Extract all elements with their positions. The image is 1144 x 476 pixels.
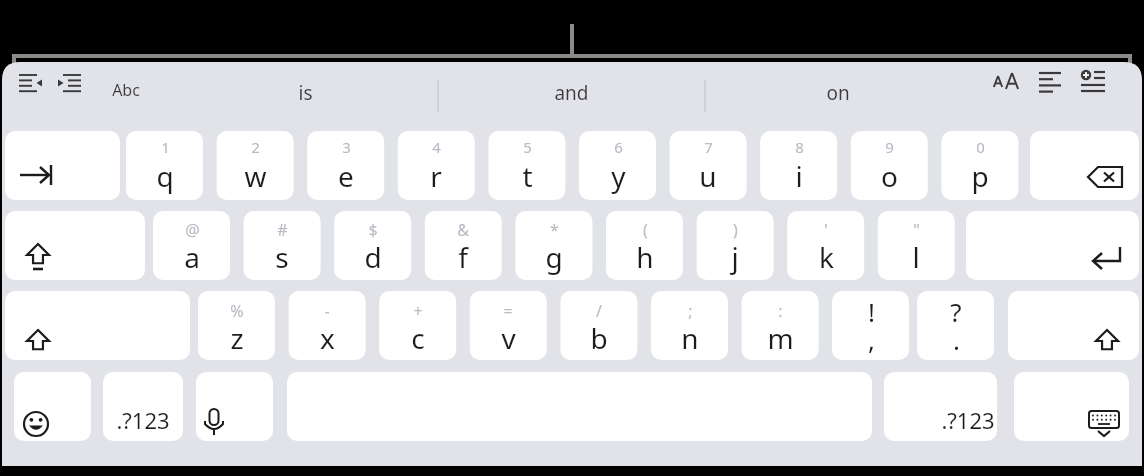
- button[interactable]: [697, 211, 774, 280]
- staticText: f: [458, 238, 468, 276]
- button[interactable]: [438, 70, 705, 114]
- staticText: on: [826, 80, 850, 106]
- button[interactable]: Shift: [1008, 291, 1139, 360]
- button[interactable]: [198, 291, 275, 360]
- staticText: k: [819, 238, 834, 276]
- button[interactable]: [289, 291, 366, 360]
- staticText: #: [277, 219, 288, 241]
- staticText: &: [457, 219, 469, 241]
- staticText: z: [230, 319, 244, 357]
- button[interactable]: [307, 131, 384, 200]
- staticText: e: [338, 157, 354, 195]
- button[interactable]: Dictation: [196, 372, 273, 441]
- button[interactable]: [103, 372, 183, 441]
- staticText: =: [503, 300, 513, 322]
- button[interactable]: Insert: [1082, 70, 1128, 112]
- staticText: d: [364, 238, 382, 276]
- button[interactable]: Shift: [5, 291, 190, 360]
- staticText: x: [320, 319, 335, 357]
- button[interactable]: [606, 211, 683, 280]
- staticText: b: [590, 319, 608, 357]
- button[interactable]: [560, 291, 637, 360]
- staticText: ': [824, 219, 828, 241]
- button[interactable]: [705, 70, 973, 114]
- staticText: %: [230, 300, 244, 322]
- button[interactable]: Backspace: [1030, 131, 1139, 200]
- button[interactable]: [334, 211, 411, 280]
- button[interactable]: Hide keyboard: [1014, 372, 1129, 441]
- staticText: r: [430, 157, 442, 195]
- staticText: ,: [868, 322, 875, 357]
- staticText: n: [681, 319, 699, 357]
- button[interactable]: [884, 372, 997, 441]
- button[interactable]: [651, 291, 728, 360]
- staticText: -: [324, 300, 330, 322]
- staticText: c: [411, 319, 425, 357]
- staticText: .?123: [941, 405, 995, 435]
- staticText: u: [699, 157, 717, 195]
- staticText: :: [778, 300, 783, 322]
- staticText: q: [156, 157, 174, 195]
- button[interactable]: [425, 211, 502, 280]
- staticText: .?123: [116, 405, 170, 435]
- staticText: 0: [976, 137, 985, 157]
- staticText: y: [611, 157, 626, 195]
- staticText: .: [953, 322, 960, 357]
- button[interactable]: [742, 291, 819, 360]
- staticText: w: [244, 157, 267, 195]
- button[interactable]: Alignment: [1038, 70, 1082, 112]
- staticText: h: [636, 238, 654, 276]
- button[interactable]: Emoji: [14, 372, 91, 441]
- staticText: is: [298, 80, 313, 106]
- button[interactable]: [217, 131, 294, 200]
- staticText: $: [368, 219, 378, 241]
- staticText: ": [913, 219, 920, 241]
- staticText: ?: [950, 294, 962, 329]
- staticText: @: [185, 219, 200, 241]
- button[interactable]: [670, 131, 747, 200]
- staticText: j: [731, 238, 739, 276]
- staticText: /: [596, 300, 602, 322]
- button[interactable]: [787, 211, 864, 280]
- button[interactable]: Tab: [5, 131, 120, 200]
- button[interactable]: Text mode Abc: [106, 72, 150, 110]
- button[interactable]: Text size: [994, 70, 1038, 112]
- button[interactable]: [941, 131, 1018, 200]
- button[interactable]: [170, 70, 438, 114]
- staticText: 6: [614, 137, 623, 157]
- staticText: 2: [251, 137, 260, 157]
- button[interactable]: [126, 131, 203, 200]
- button[interactable]: Caps lock: [5, 211, 145, 280]
- button[interactable]: [244, 211, 321, 280]
- staticText: l: [912, 238, 920, 276]
- button[interactable]: [379, 291, 456, 360]
- button[interactable]: [579, 131, 656, 200]
- button[interactable]: [878, 211, 955, 280]
- button[interactable]: [760, 131, 837, 200]
- button[interactable]: [851, 131, 928, 200]
- staticText: m: [767, 319, 794, 357]
- staticText: 5: [523, 137, 532, 157]
- staticText: *: [550, 219, 559, 241]
- staticText: a: [184, 238, 200, 276]
- button[interactable]: [832, 291, 909, 360]
- staticText: !: [868, 294, 875, 329]
- button[interactable]: [470, 291, 547, 360]
- staticText: and: [554, 80, 589, 106]
- staticText: +: [413, 300, 423, 322]
- staticText: s: [275, 238, 289, 276]
- button[interactable]: [917, 291, 994, 360]
- button[interactable]: [488, 131, 565, 200]
- button[interactable]: Outdent: [16, 72, 60, 110]
- staticText: v: [501, 319, 516, 357]
- staticText: g: [545, 238, 563, 276]
- button[interactable]: [398, 131, 475, 200]
- staticText: 9: [885, 137, 894, 157]
- button[interactable]: Return: [966, 211, 1139, 280]
- button[interactable]: [153, 211, 230, 280]
- staticText: Abc: [112, 79, 140, 101]
- button[interactable]: [515, 211, 592, 280]
- button[interactable]: Indent: [60, 72, 104, 110]
- staticText: o: [881, 157, 898, 195]
